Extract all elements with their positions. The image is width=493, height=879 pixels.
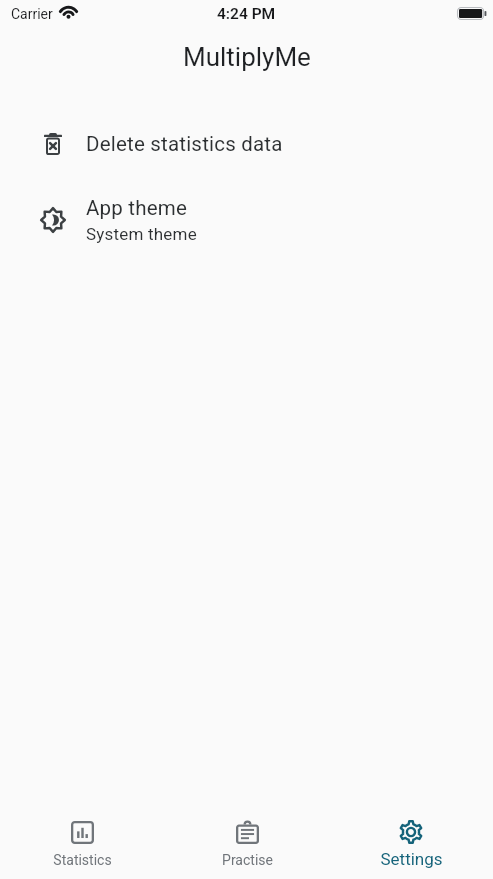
other: Delete statistics data: [44, 133, 62, 155]
staticText: Carrier: [11, 6, 53, 22]
staticText: MultiplyMe: [183, 42, 311, 72]
staticText: Practise: [222, 852, 273, 868]
staticText: Delete statistics data: [86, 132, 283, 156]
other: App theme: [40, 207, 66, 233]
staticText: Statistics: [53, 852, 112, 868]
button[interactable]: App theme: [0, 172, 493, 256]
staticText: 4:24 PM: [217, 5, 276, 23]
staticText: System theme: [86, 224, 197, 244]
button[interactable]: Statistics: [0, 807, 165, 879]
button[interactable]: Delete statistics data: [0, 116, 493, 172]
staticText: Settings: [380, 849, 443, 869]
button[interactable]: Settings: [329, 807, 493, 879]
button[interactable]: Practise: [165, 807, 329, 879]
staticText: App theme: [86, 196, 187, 220]
